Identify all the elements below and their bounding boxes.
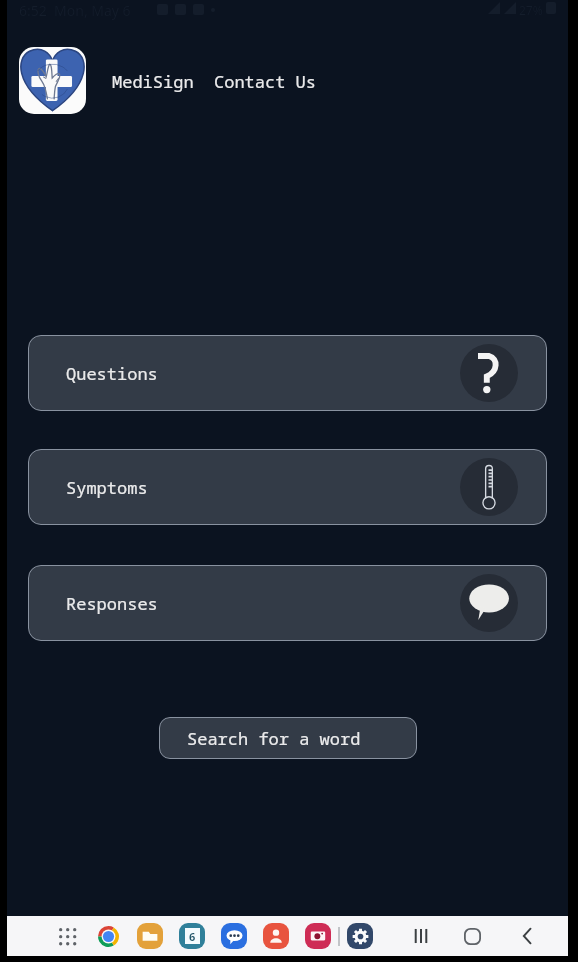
staticText: Search for a word <box>187 727 361 750</box>
button[interactable]: MediSign logo <box>19 47 86 114</box>
staticText: Questions <box>66 362 158 385</box>
staticText: Responses <box>66 592 158 615</box>
staticText: Symptoms <box>66 476 148 499</box>
button[interactable]: All apps <box>53 922 81 950</box>
button[interactable]: MediSign <box>112 70 194 93</box>
button[interactable]: Recents <box>405 920 437 952</box>
button[interactable]: Settings <box>347 923 373 949</box>
button[interactable]: Symptoms <box>28 449 547 525</box>
button[interactable]: Search for a word <box>159 717 417 759</box>
staticText: 6 <box>189 929 196 944</box>
button[interactable]: Responses <box>28 565 547 641</box>
button[interactable]: Files <box>137 923 163 949</box>
button[interactable]: Back <box>511 920 543 952</box>
button[interactable]: Questions <box>28 335 547 411</box>
button[interactable]: Messages <box>221 923 247 949</box>
button[interactable]: Chrome <box>95 923 121 949</box>
button[interactable]: Home <box>456 920 488 952</box>
button[interactable]: Calendar <box>179 923 205 949</box>
button[interactable]: Contacts <box>263 923 289 949</box>
button[interactable]: Contact Us <box>214 70 316 93</box>
button[interactable]: Camera <box>305 923 331 949</box>
